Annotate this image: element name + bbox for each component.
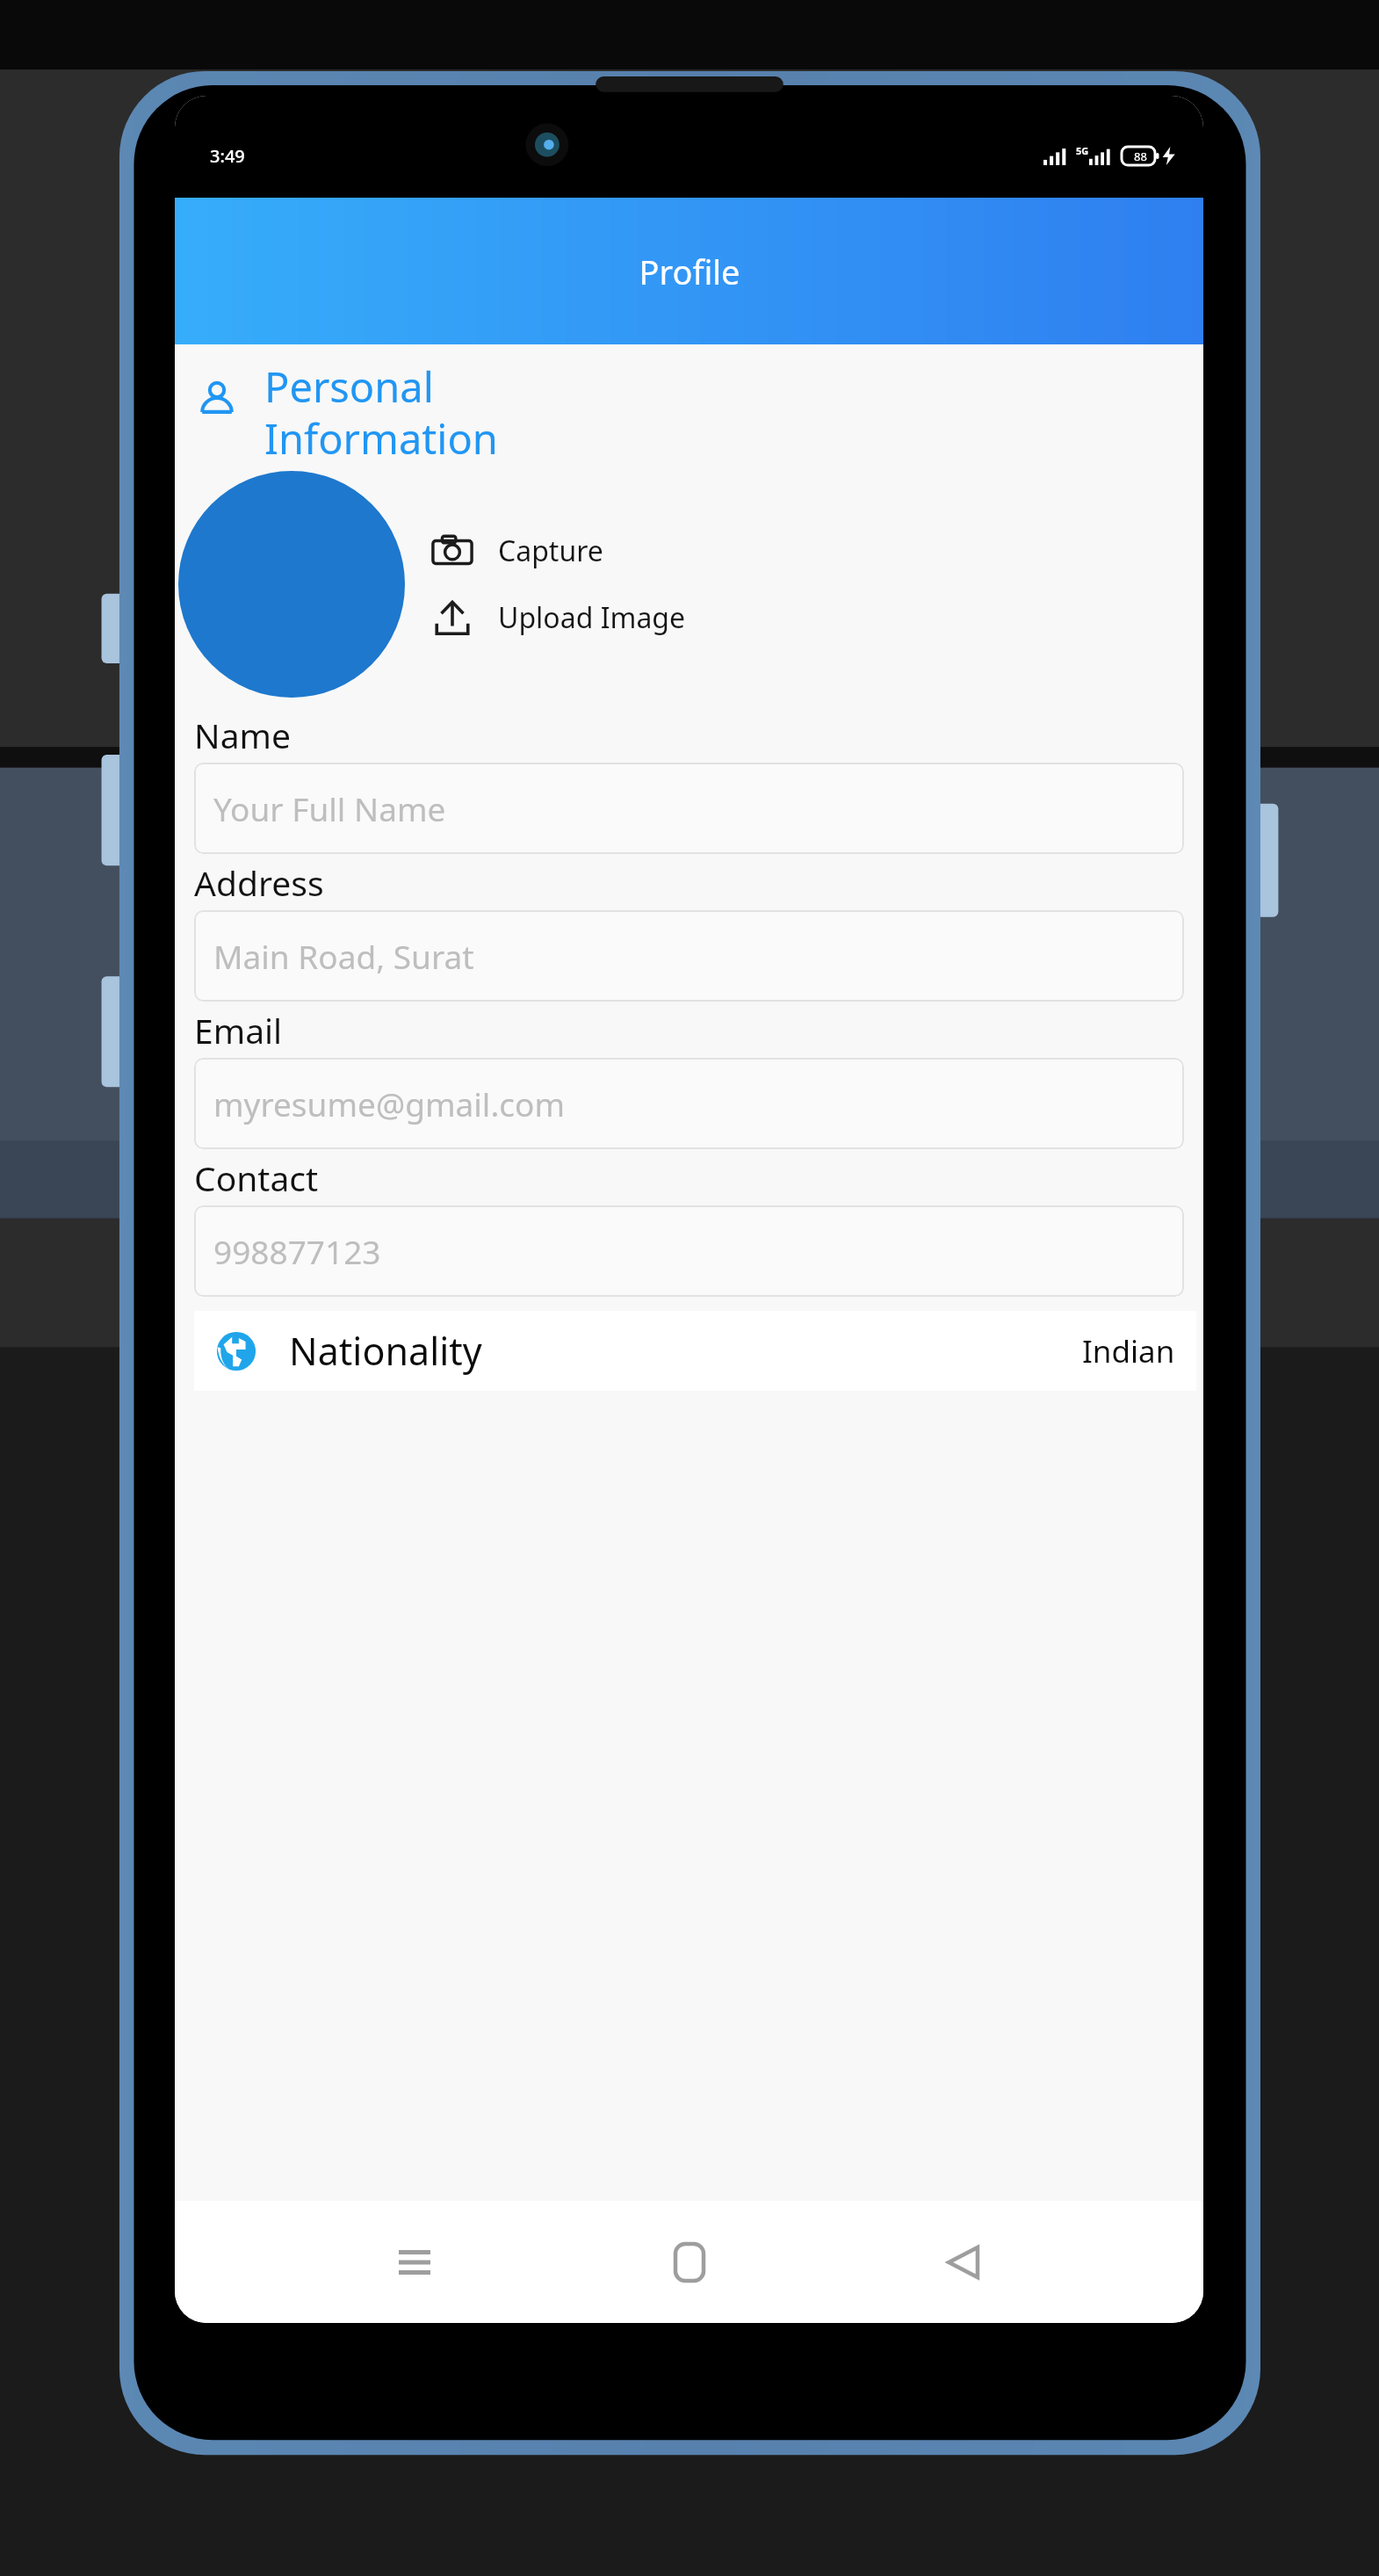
button[interactable]: Upload Image	[431, 597, 686, 639]
button[interactable]: Main Road, Surat	[194, 910, 1184, 1002]
staticText: Name	[194, 712, 291, 758]
button[interactable]: Home	[654, 2227, 725, 2297]
button[interactable]: Recent apps	[379, 2227, 450, 2297]
staticText: myresume@gmail.com	[213, 1082, 566, 1125]
staticText: Capture	[498, 532, 603, 570]
staticText: Personal Information	[264, 358, 498, 466]
staticText: Upload Image	[498, 598, 686, 637]
staticText: 88	[1134, 148, 1147, 164]
button[interactable]: Back	[928, 2227, 999, 2297]
staticText: Profile	[639, 249, 740, 294]
button[interactable]: Capture	[431, 530, 603, 572]
staticText: Address	[194, 859, 324, 906]
staticText: Nationality	[289, 1325, 482, 1377]
button[interactable]: myresume@gmail.com	[194, 1058, 1184, 1149]
staticText: 3:49	[210, 144, 245, 168]
staticText: 5G	[1076, 144, 1089, 157]
staticText: Main Road, Surat	[213, 934, 474, 978]
staticText: Email	[194, 1007, 283, 1053]
staticText: Your Full Name	[213, 786, 446, 830]
staticText: Indian	[1082, 1330, 1175, 1372]
button[interactable]: Profile photo	[178, 471, 405, 698]
button[interactable]: Nationality	[194, 1311, 1196, 1391]
staticText: Contact	[194, 1154, 319, 1201]
staticText: 998877123	[213, 1229, 381, 1273]
button[interactable]: 998877123	[194, 1205, 1184, 1297]
button[interactable]: Your Full Name	[194, 763, 1184, 854]
